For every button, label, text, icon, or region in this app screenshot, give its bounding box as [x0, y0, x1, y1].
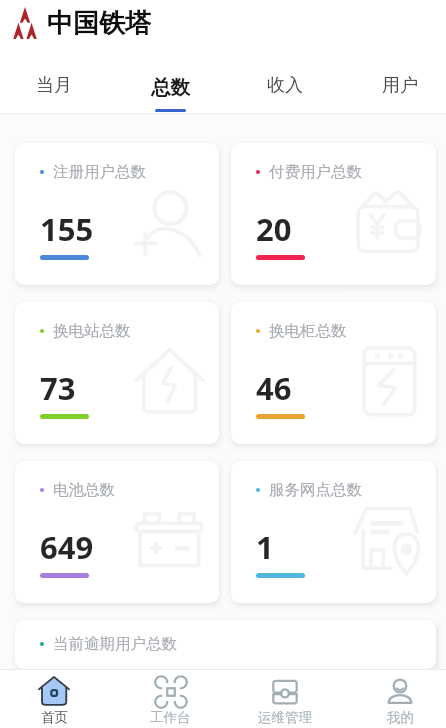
button[interactable]: 电池总数 [15, 461, 219, 603]
staticText: 73 [40, 367, 76, 409]
staticText: 电池总数 [53, 480, 115, 500]
staticText: 总数 [151, 75, 190, 100]
button[interactable]: 服务网点总数 [231, 461, 436, 603]
staticText: 工作台 [150, 709, 191, 726]
button[interactable]: 收入 [247, 48, 323, 114]
staticText: 中国铁塔 [47, 7, 151, 40]
button[interactable]: 首页 [10, 670, 98, 728]
staticText: 换电站总数 [53, 321, 131, 341]
staticText: 首页 [41, 709, 68, 726]
staticText: 649 [40, 526, 94, 568]
button[interactable]: 换电柜总数 [231, 302, 436, 444]
staticText: 运维管理 [258, 709, 312, 726]
staticText: 当前逾期用户总数 [53, 634, 177, 654]
staticText: 注册用户总数 [53, 162, 146, 182]
staticText: 当月 [36, 74, 72, 97]
staticText: 收入 [267, 74, 303, 97]
button[interactable]: 用户 [362, 48, 438, 114]
button[interactable]: 当前逾期用户总数 [15, 620, 436, 669]
staticText: 用户 [382, 74, 418, 97]
button[interactable]: 换电站总数 [15, 302, 219, 444]
staticText: 我的 [387, 709, 414, 726]
staticText: 20 [256, 208, 292, 250]
button[interactable]: 当月 [16, 48, 92, 114]
button[interactable]: 注册用户总数 [15, 143, 219, 285]
staticText: 1 [256, 526, 274, 568]
button[interactable]: 工作台 [126, 670, 214, 728]
staticText: 换电柜总数 [269, 321, 347, 341]
staticText: 155 [40, 208, 94, 250]
button[interactable]: 付费用户总数 [231, 143, 436, 285]
staticText: 46 [256, 367, 292, 409]
button[interactable]: 运维管理 [241, 670, 329, 728]
staticText: 付费用户总数 [269, 162, 362, 182]
button[interactable]: 我的 [356, 670, 444, 728]
button[interactable]: 总数 [132, 48, 208, 114]
staticText: 服务网点总数 [269, 480, 362, 500]
